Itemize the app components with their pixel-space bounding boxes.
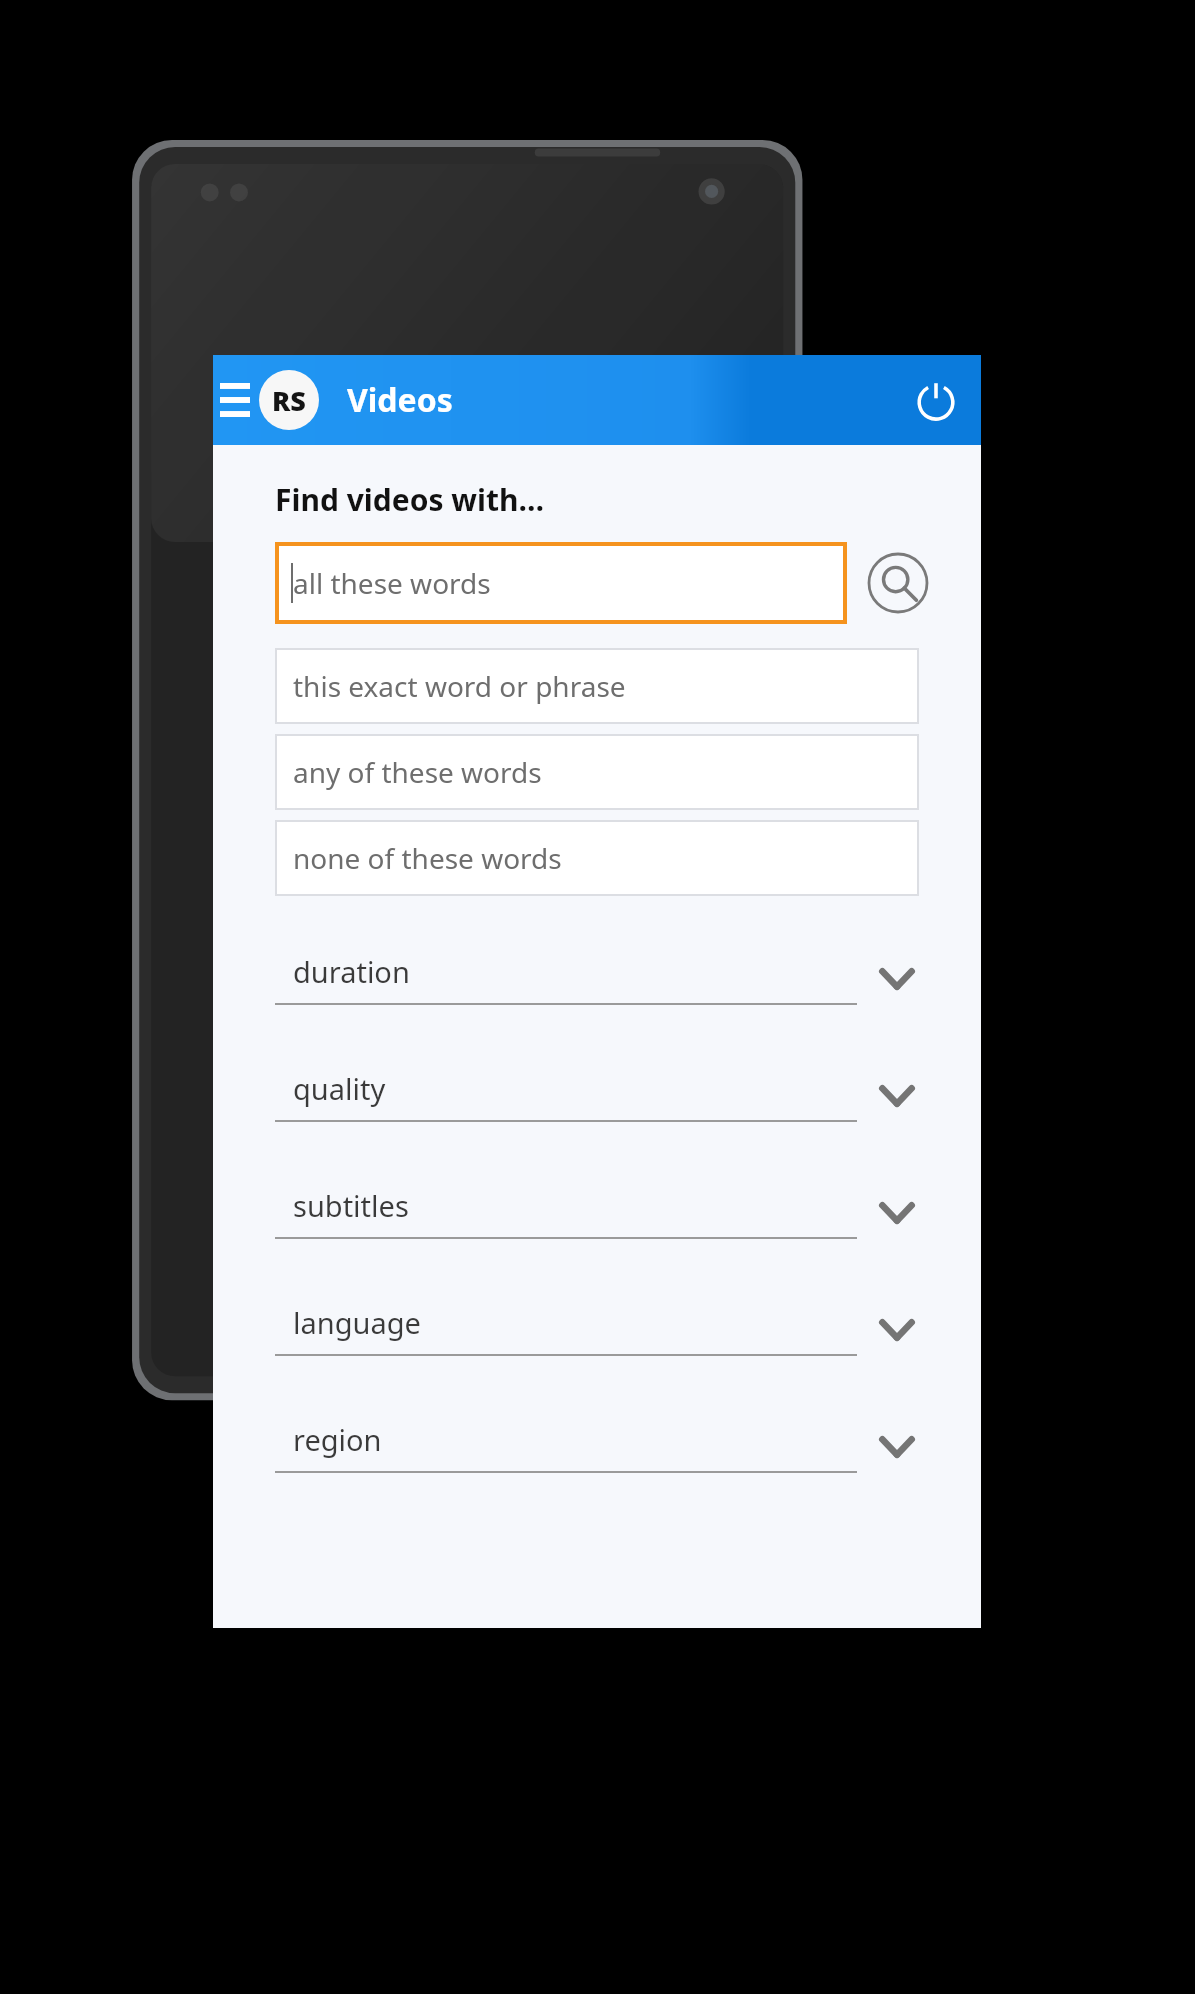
other: Expand duration [875,957,919,1001]
other: Expand region [875,1425,919,1469]
button[interactable]: quality [213,1055,981,1172]
staticText: language [293,1303,421,1342]
staticText: all these words [293,564,491,602]
staticText: Videos [347,378,453,422]
button[interactable]: Search [867,552,929,614]
staticText: this exact word or phrase [293,667,626,705]
staticText: any of these words [293,753,542,791]
staticText: RS [272,382,306,419]
staticText: subtitles [293,1186,409,1225]
staticText: quality [293,1069,386,1108]
button[interactable]: duration [213,938,981,1055]
other: Expand quality [875,1074,919,1118]
button[interactable]: this exact word or phrase [275,648,919,724]
other: Expand subtitles [875,1191,919,1235]
button[interactable]: all these words [275,542,847,624]
staticText: duration [293,952,410,991]
button[interactable]: App logo [259,370,319,430]
button[interactable]: Open navigation menu [215,355,255,445]
button[interactable]: region [213,1406,981,1523]
button[interactable]: subtitles [213,1172,981,1289]
button[interactable]: any of these words [275,734,919,810]
other: Expand language [875,1308,919,1352]
staticText: Find videos with… [275,479,545,520]
button[interactable]: language [213,1289,981,1406]
button[interactable]: none of these words [275,820,919,896]
staticText: none of these words [293,839,562,877]
staticText: region [293,1420,382,1459]
button[interactable]: Power, sign out [891,355,981,445]
